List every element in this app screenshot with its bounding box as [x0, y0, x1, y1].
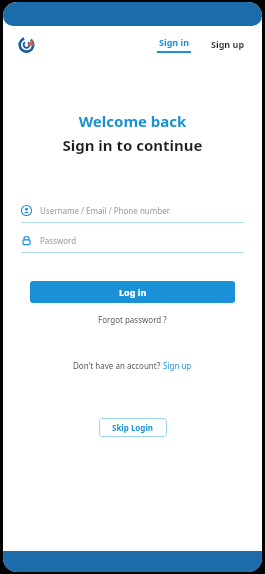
staticText: Don't have an account?	[73, 360, 163, 371]
button[interactable]: Forgot password ?	[92, 312, 173, 327]
staticText: Username / Email / Phone number	[40, 205, 170, 216]
other: App logo	[19, 36, 36, 53]
button[interactable]: Password	[21, 232, 244, 253]
staticText: Sign up	[163, 360, 192, 371]
button[interactable]: Sign up	[207, 36, 249, 52]
staticText: Sign in to continue	[3, 135, 262, 155]
staticText: Skip Login	[112, 422, 154, 433]
button[interactable]: Username / Email / Phone number	[21, 202, 244, 223]
button[interactable]: Log in	[30, 281, 235, 303]
button[interactable]: Sign in	[153, 34, 195, 55]
staticText: Welcome back	[3, 111, 262, 131]
staticText: Password	[40, 235, 77, 246]
staticText: Sign up	[211, 38, 245, 50]
button[interactable]: Skip Login	[99, 418, 167, 437]
button[interactable]: Sign up	[163, 360, 192, 371]
staticText: Log in	[119, 286, 147, 298]
staticText: Sign in	[159, 36, 190, 48]
staticText: Forgot password ?	[98, 314, 167, 325]
